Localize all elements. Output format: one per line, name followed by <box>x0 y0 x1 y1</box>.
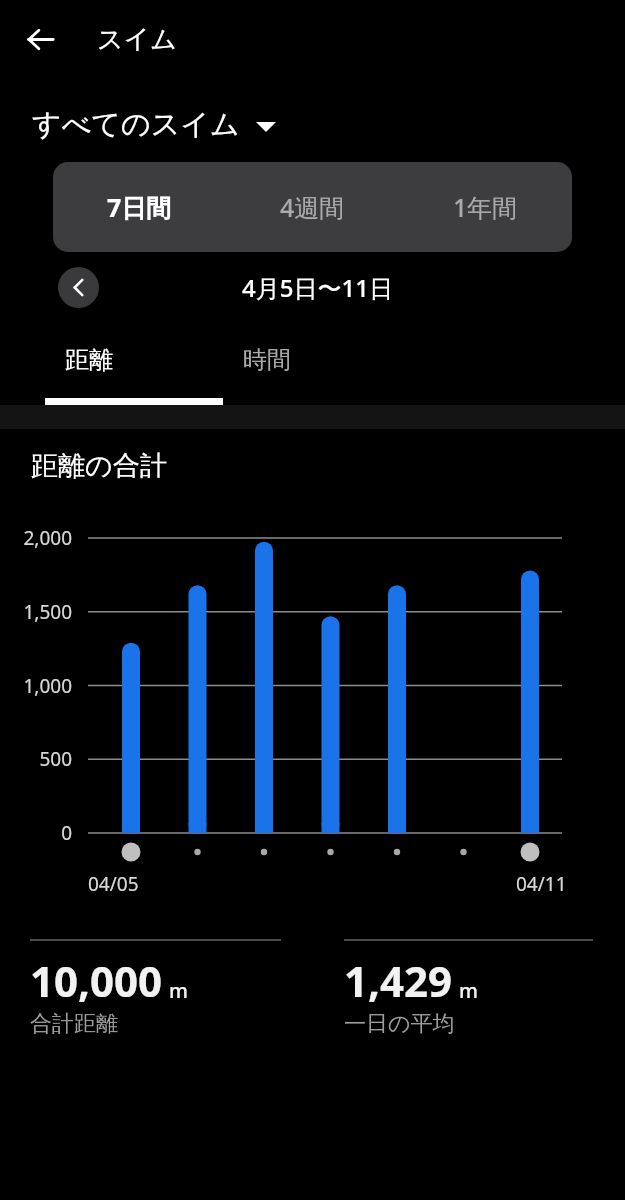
button[interactable]: すべてのスイム <box>28 104 280 145</box>
staticText: 1年間 <box>453 190 518 224</box>
staticText: m <box>459 977 478 1004</box>
staticText: 4週間 <box>280 190 345 224</box>
staticText: 距離の合計 <box>31 449 167 483</box>
staticText: スイム <box>97 23 177 56</box>
staticText: m <box>169 977 188 1004</box>
button[interactable]: 4週間 <box>226 162 399 252</box>
button[interactable]: 1年間 <box>399 162 572 252</box>
staticText: 1,500 <box>0 599 72 625</box>
staticText: 1,429 <box>344 952 453 1009</box>
staticText: 500 <box>0 746 72 772</box>
staticText: 04/05 <box>88 871 139 897</box>
button[interactable]: 距離 <box>0 322 178 398</box>
button[interactable]: 10,000 <box>30 939 281 1038</box>
staticText: 4月5日〜11日 <box>242 271 393 304</box>
staticText: 04/11 <box>516 871 567 897</box>
button[interactable]: 1,429 <box>344 939 593 1038</box>
button[interactable]: 時間 <box>178 322 356 398</box>
staticText: 距離 <box>65 345 113 375</box>
staticText: 時間 <box>243 345 291 375</box>
staticText: 合計距離 <box>30 1010 118 1038</box>
staticText: 7日間 <box>107 190 172 224</box>
staticText: 0 <box>0 820 72 846</box>
button[interactable]: 7日間 <box>53 162 226 252</box>
staticText: 10,000 <box>30 952 163 1009</box>
staticText: すべてのスイム <box>32 106 240 143</box>
button[interactable]: Back <box>13 12 67 66</box>
staticText: 2,000 <box>0 525 72 551</box>
button[interactable]: Previous period <box>58 267 99 308</box>
staticText: 一日の平均 <box>344 1010 455 1038</box>
staticText: 1,000 <box>0 673 72 699</box>
